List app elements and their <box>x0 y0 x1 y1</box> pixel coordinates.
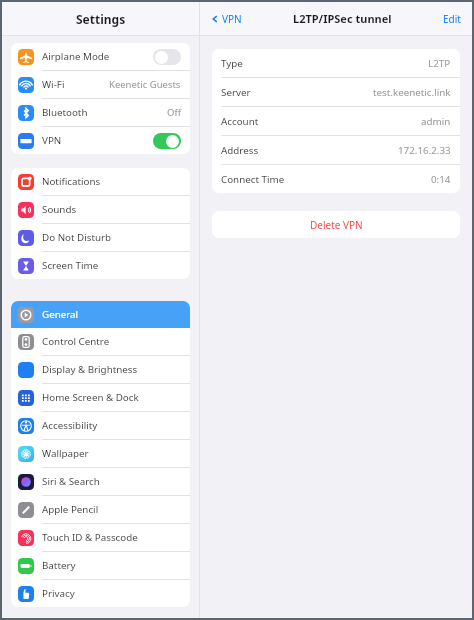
button[interactable]: Sounds <box>11 196 190 223</box>
button[interactable]: Account <box>212 107 460 135</box>
button[interactable]: VPN <box>11 127 190 154</box>
button[interactable]: Address <box>212 136 460 164</box>
staticText: Accessibility <box>42 419 98 432</box>
staticText: Keenetic Guests <box>109 78 181 91</box>
staticText: Notifications <box>42 175 101 188</box>
staticText: Airplane Mode <box>42 50 110 63</box>
staticText: 172.16.2.33 <box>398 144 451 157</box>
staticText: Off <box>167 106 181 119</box>
button[interactable]: Do Not Disturb <box>11 224 190 251</box>
button[interactable]: Touch ID & Passcode <box>11 524 190 551</box>
button[interactable]: Battery <box>11 552 190 579</box>
button[interactable]: Notifications <box>11 168 190 195</box>
staticText: admin <box>421 115 451 128</box>
staticText: Battery <box>42 559 76 572</box>
button[interactable]: Server <box>212 78 460 106</box>
staticText: Wallpaper <box>42 447 89 460</box>
button[interactable]: Airplane Mode <box>11 43 190 70</box>
staticText: Server <box>221 86 251 99</box>
staticText: Connect Time <box>221 173 285 186</box>
staticText: L2TP/IPSec tunnel <box>293 11 392 26</box>
button[interactable]: General <box>11 301 190 328</box>
staticText: Delete VPN <box>310 218 363 232</box>
staticText: VPN <box>42 134 62 147</box>
staticText: Account <box>221 115 259 128</box>
staticText: Sounds <box>42 203 77 216</box>
button[interactable]: Delete VPN <box>212 211 460 238</box>
button[interactable]: Connect Time <box>212 165 460 193</box>
staticText: Settings <box>76 11 126 27</box>
staticText: 0:14 <box>431 173 451 186</box>
button[interactable]: On <box>153 133 181 149</box>
button[interactable]: Bluetooth <box>11 99 190 126</box>
button[interactable]: Home Screen & Dock <box>11 384 190 411</box>
button[interactable]: Apple Pencil <box>11 496 190 523</box>
staticText: Bluetooth <box>42 106 88 119</box>
staticText: Wi-Fi <box>42 78 65 91</box>
staticText: Screen Time <box>42 259 99 272</box>
staticText: test.keenetic.link <box>373 86 451 99</box>
staticText: Edit <box>443 12 461 26</box>
button[interactable]: Off <box>153 49 181 65</box>
button[interactable]: Type <box>212 49 460 77</box>
button[interactable]: VPN <box>209 10 244 28</box>
staticText: Address <box>221 144 259 157</box>
button[interactable]: Edit <box>441 10 463 28</box>
button[interactable]: Wi-Fi <box>11 71 190 98</box>
staticText: Apple Pencil <box>42 503 99 516</box>
staticText: Do Not Disturb <box>42 231 112 244</box>
button[interactable]: Control Centre <box>11 328 190 355</box>
button[interactable]: Siri & Search <box>11 468 190 495</box>
button[interactable]: Accessibility <box>11 412 190 439</box>
staticText: Control Centre <box>42 335 110 348</box>
staticText: L2TP <box>428 57 451 70</box>
staticText: Type <box>221 57 243 70</box>
staticText: Touch ID & Passcode <box>42 531 138 544</box>
button[interactable]: Privacy <box>11 580 190 607</box>
staticText: VPN <box>222 12 242 26</box>
button[interactable]: Screen Time <box>11 252 190 279</box>
staticText: Home Screen & Dock <box>42 391 139 404</box>
button[interactable]: Display & Brightness <box>11 356 190 383</box>
staticText: Privacy <box>42 587 75 600</box>
staticText: General <box>42 308 79 321</box>
button[interactable]: Wallpaper <box>11 440 190 467</box>
staticText: Siri & Search <box>42 475 100 488</box>
staticText: Display & Brightness <box>42 363 138 376</box>
